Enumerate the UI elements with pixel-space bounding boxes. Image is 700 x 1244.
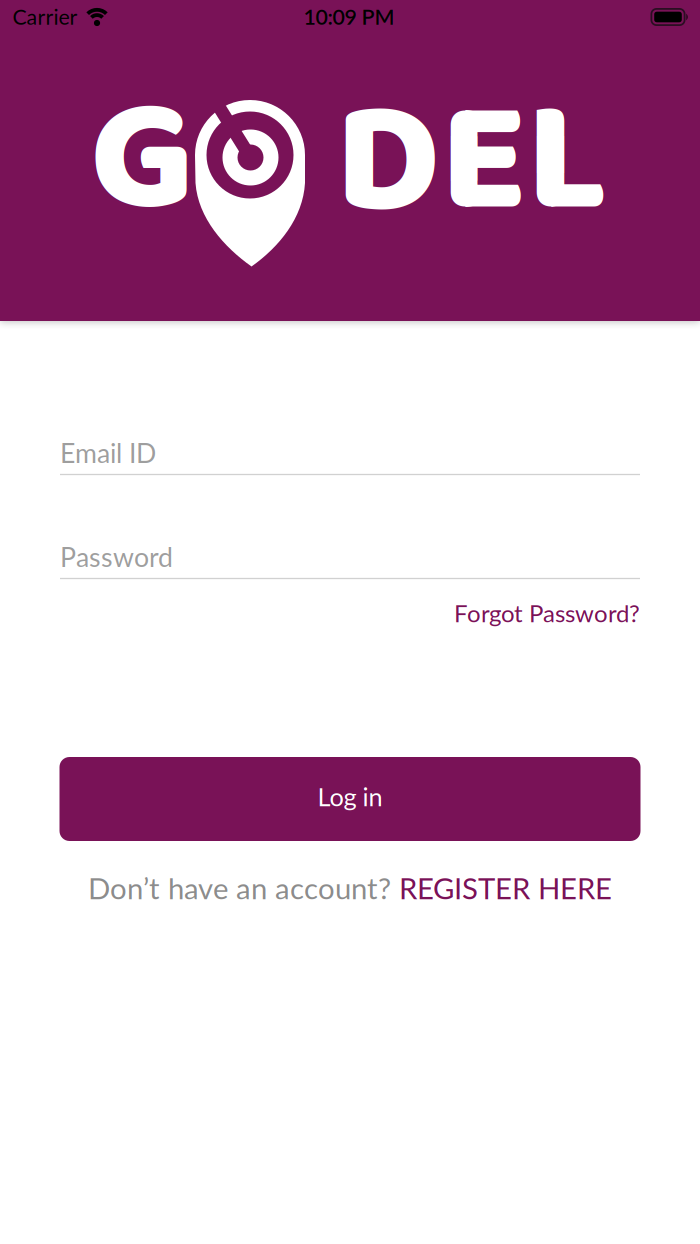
staticText: Password [60, 541, 173, 572]
button[interactable]: Password [60, 541, 640, 593]
staticText: REGISTER HERE [399, 871, 612, 905]
staticText: DEL [335, 37, 607, 289]
staticText: Carrier [12, 4, 77, 29]
button[interactable]: REGISTER HERE [399, 871, 612, 905]
staticText: Email ID [60, 437, 156, 468]
staticText: Don’t have an account? [88, 871, 391, 905]
button[interactable]: Email ID [60, 437, 640, 489]
button[interactable]: Forgot Password? [454, 599, 640, 627]
staticText: 10:09 PM [303, 4, 394, 29]
button[interactable]: Log in [59, 757, 640, 841]
staticText: G [90, 34, 194, 286]
staticText: Log in [317, 782, 382, 811]
staticText: Forgot Password? [454, 599, 640, 627]
